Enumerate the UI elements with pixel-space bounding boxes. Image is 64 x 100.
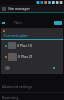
staticText: Current plan <box>4 33 28 38</box>
staticText: X Plus 21 <box>18 54 33 59</box>
staticText: Plans <box>14 21 22 25</box>
button[interactable] <box>1 62 63 73</box>
button[interactable]: X Plus 10 <box>1 40 63 51</box>
staticText: Advanced settings <box>2 84 33 89</box>
button[interactable]: Site manager <box>0 5 64 12</box>
staticText: Reporting <box>2 95 19 100</box>
staticText: X Plus 10 <box>17 43 32 48</box>
button[interactable]: Upgrade <box>54 21 62 25</box>
button[interactable]: X Plus 21 <box>1 51 63 62</box>
staticText: Site manager <box>8 6 30 11</box>
